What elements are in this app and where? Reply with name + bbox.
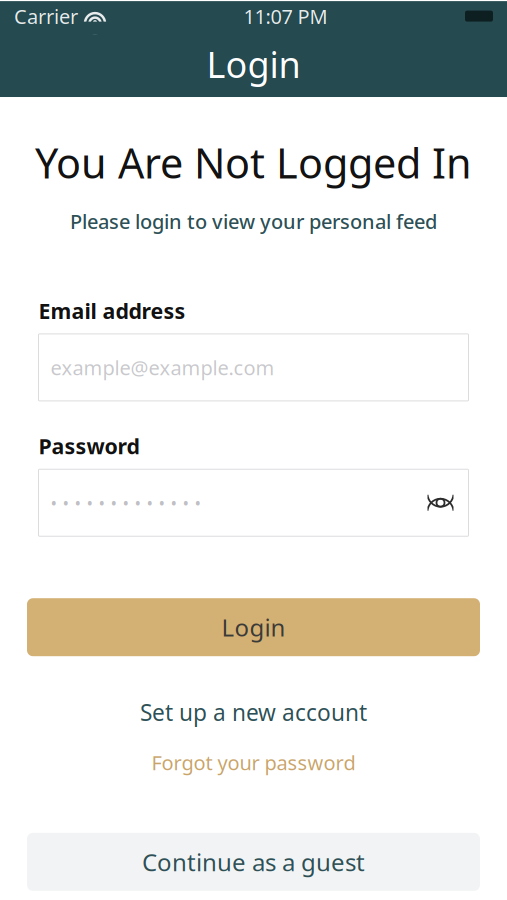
staticText: 11:07 PM [243, 3, 327, 29]
staticText: • • • • • • • • • • • • • [50, 491, 201, 514]
staticText: Set up a new account [140, 697, 367, 727]
staticText: Please login to view your personal feed [70, 208, 437, 235]
button[interactable]: Forgot your password [131, 743, 375, 782]
staticText: You Are Not Logged In [35, 135, 472, 190]
staticText: Email address [38, 297, 185, 325]
staticText: Forgot your password [151, 749, 355, 776]
button[interactable]: Set up a new account [120, 689, 387, 735]
button[interactable]: Show password [418, 481, 462, 525]
staticText: example@example.com [50, 354, 274, 381]
staticText: Password [38, 432, 139, 460]
button[interactable]: Continue as a guest [27, 833, 480, 891]
staticText: Login [221, 611, 285, 643]
staticText: Continue as a guest [142, 846, 365, 878]
staticText: Login [206, 40, 300, 88]
staticText: Carrier [14, 3, 78, 29]
button[interactable]: Login [27, 598, 480, 656]
